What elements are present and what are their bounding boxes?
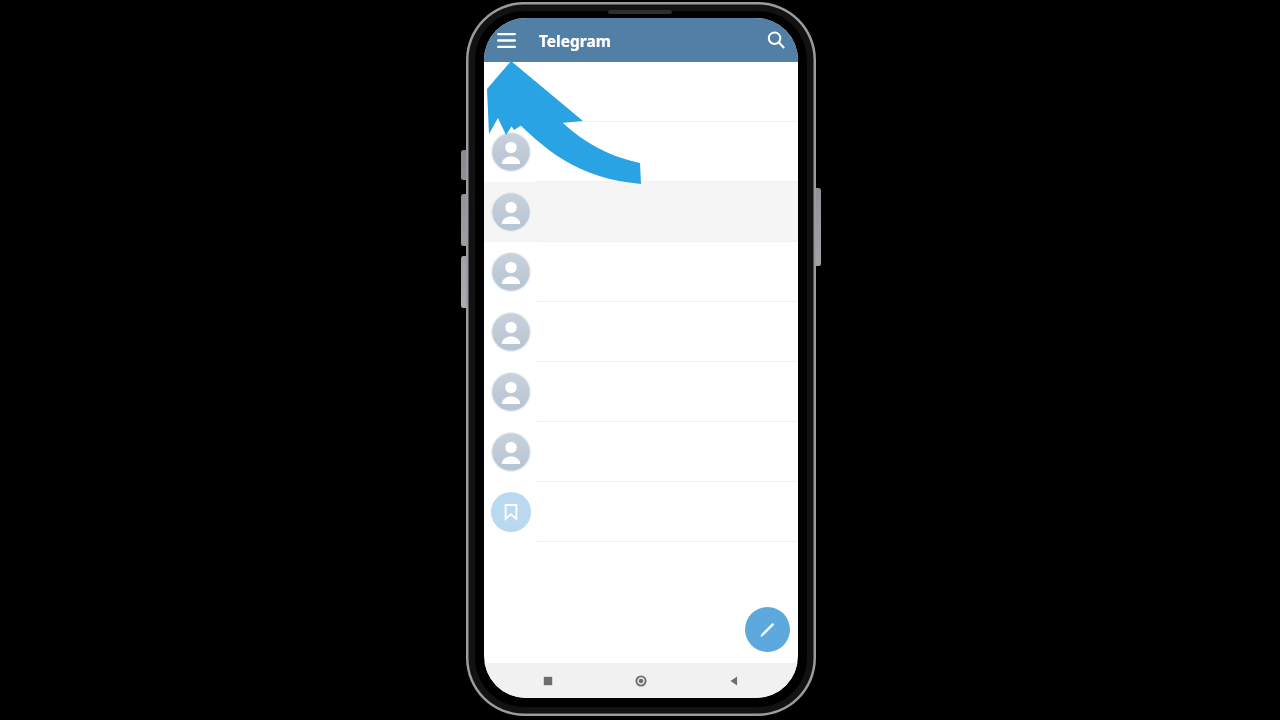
button[interactable]: [484, 482, 798, 542]
button[interactable]: [484, 122, 798, 182]
button[interactable]: [484, 242, 798, 302]
button[interactable]: Back: [719, 666, 749, 696]
button[interactable]: Recent apps: [533, 666, 563, 696]
button[interactable]: Open navigation menu: [487, 21, 525, 59]
staticText: Telegram: [539, 30, 611, 51]
button[interactable]: [484, 302, 798, 362]
button[interactable]: [484, 182, 798, 242]
button[interactable]: New message: [745, 607, 790, 652]
button[interactable]: Search: [757, 21, 795, 59]
button[interactable]: [484, 362, 798, 422]
button[interactable]: [484, 62, 798, 122]
button[interactable]: [484, 422, 798, 482]
button[interactable]: Home: [626, 666, 656, 696]
